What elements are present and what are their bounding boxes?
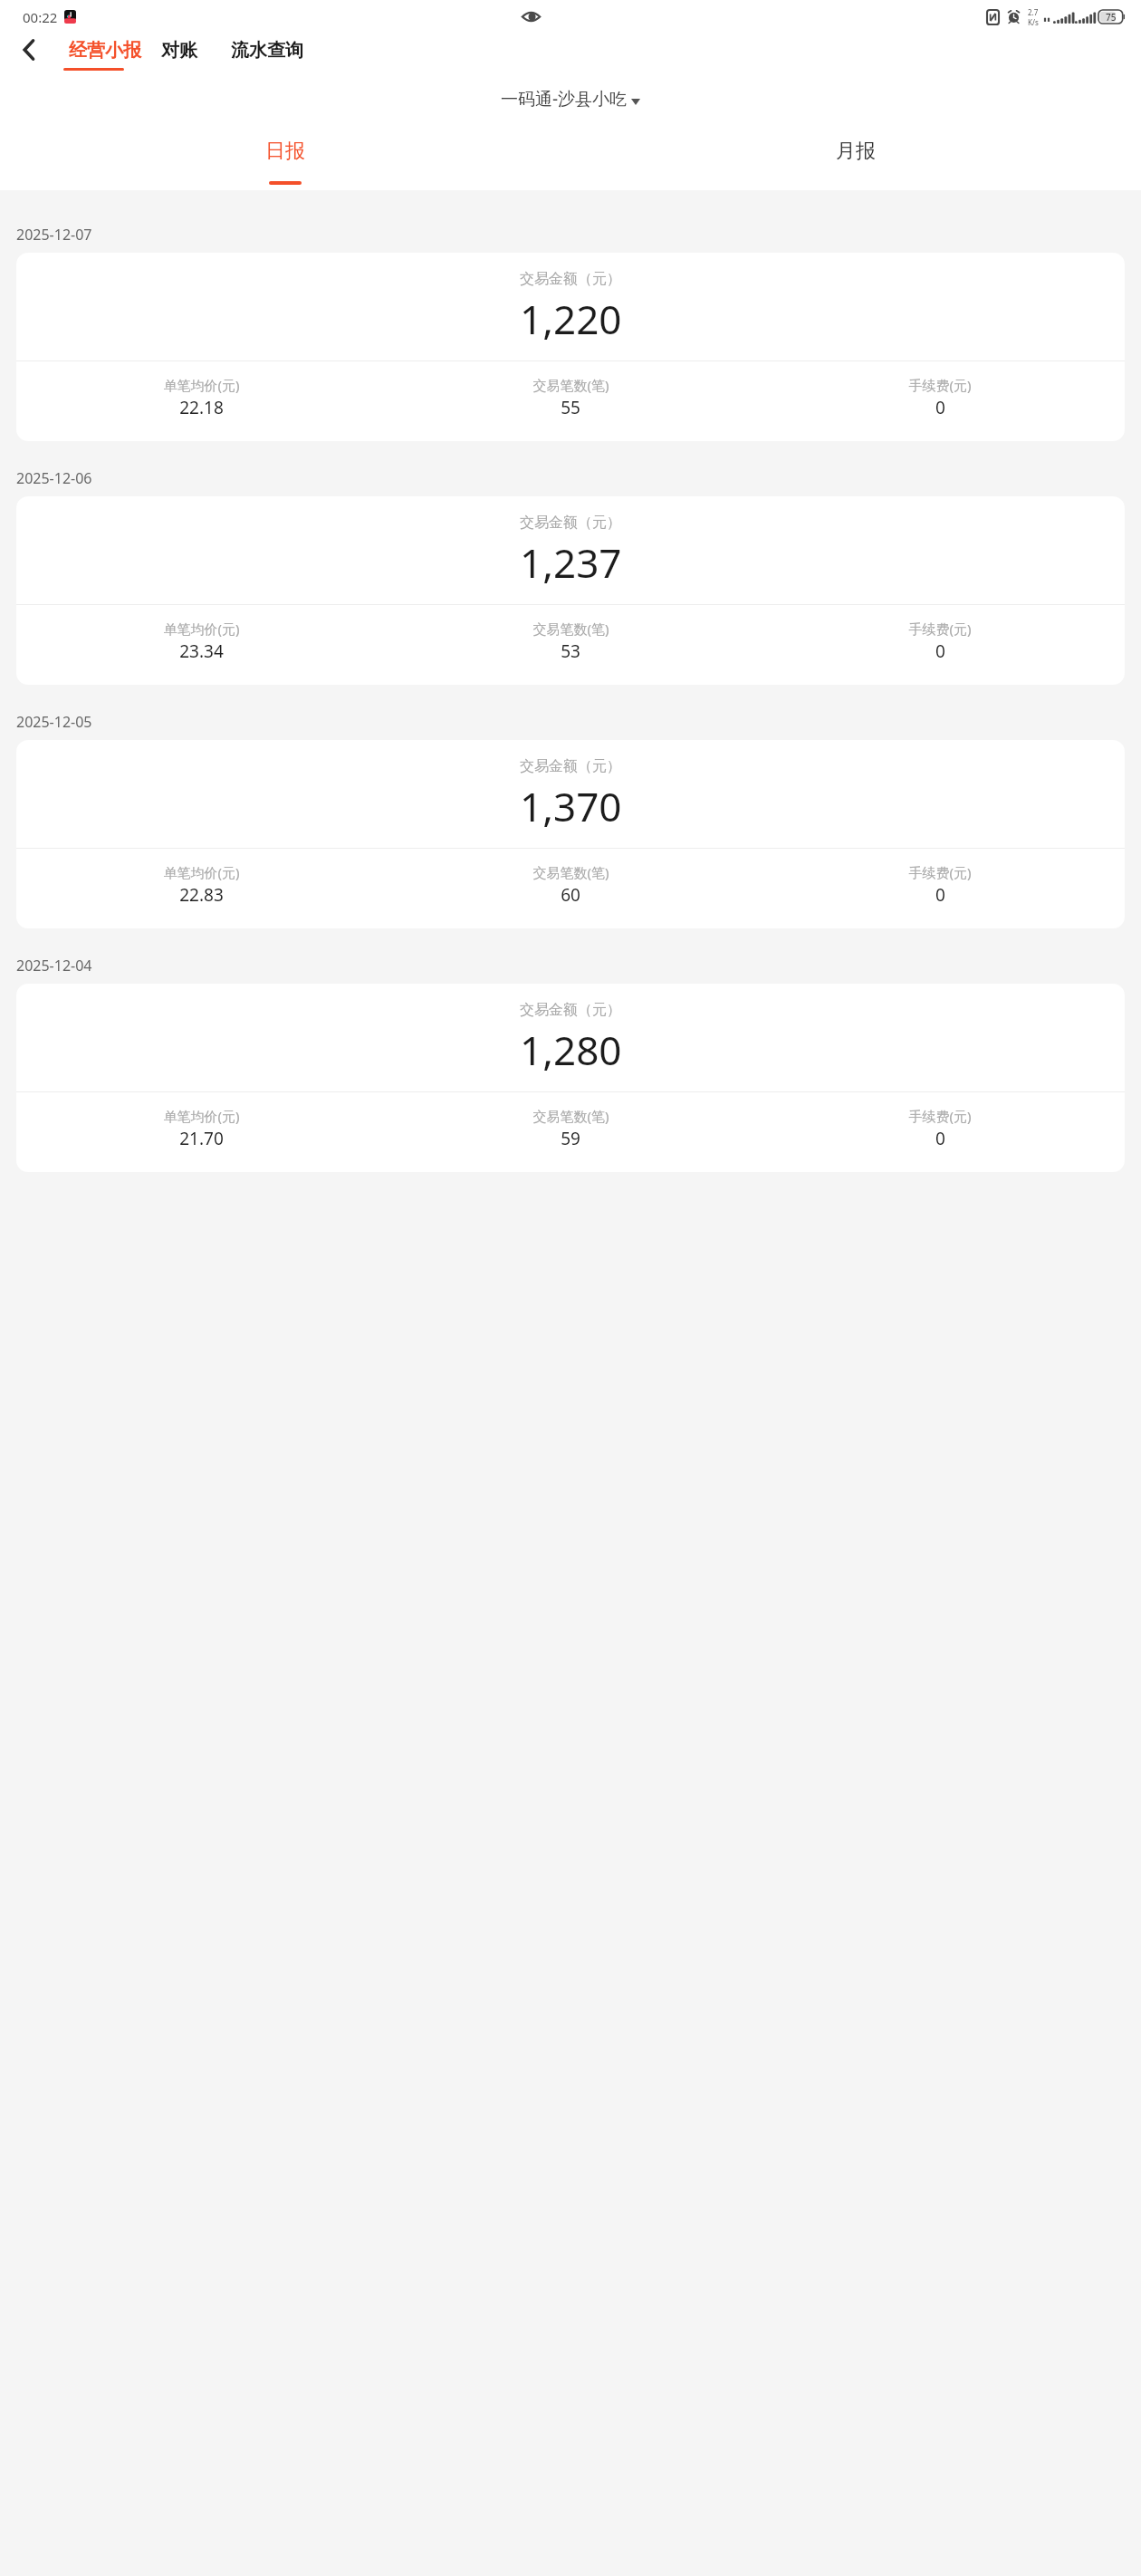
staticText: 交易笔数(笔) [532,863,609,881]
staticText: 23.34 [179,639,224,663]
button[interactable]: 日报 [0,134,570,190]
staticText: 1,237 [520,535,622,590]
staticText: 2025-12-06 [16,468,92,488]
staticText: 流水查询 [231,39,303,62]
staticText: 交易金额（元） [520,757,621,775]
staticText: 60 [561,883,580,907]
staticText: 75 [1106,11,1117,24]
button[interactable]: 经营小报 [63,37,147,63]
staticText: 交易笔数(笔) [532,376,609,394]
button[interactable]: 一码通-沙县小吃 [492,83,649,114]
staticText: 单笔均价(元) [163,620,240,638]
staticText: 单笔均价(元) [163,376,240,394]
staticText: 交易金额（元） [520,1001,621,1019]
staticText: 月报 [836,139,876,164]
staticText: 手续费(元) [908,376,972,394]
staticText: 00:22 [23,8,58,26]
staticText: 交易笔数(笔) [532,1107,609,1125]
staticText: 1,370 [520,779,622,833]
staticText: 对账 [161,39,197,62]
staticText: K/s [1028,17,1039,27]
staticText: 手续费(元) [908,620,972,638]
staticText: 交易笔数(笔) [532,620,609,638]
button[interactable]: 流水查询 [225,37,309,63]
staticText: 1,280 [520,1023,622,1077]
staticText: 经营小报 [69,39,141,62]
staticText: 日报 [265,139,305,164]
staticText: 0 [935,883,945,907]
button[interactable]: 对账 [156,37,203,63]
button[interactable]: Back [11,34,47,66]
button[interactable]: 交易金额（元） [16,253,1125,441]
staticText: 53 [561,639,580,663]
staticText: 22.83 [179,883,224,907]
staticText: 59 [561,1127,580,1150]
button[interactable]: 交易金额（元） [16,496,1125,685]
button[interactable]: 交易金额（元） [16,740,1125,928]
staticText: 0 [935,396,945,419]
staticText: 0 [935,639,945,663]
staticText: 2.7 [1028,7,1039,17]
staticText: 手续费(元) [908,1107,972,1125]
staticText: 交易金额（元） [520,514,621,532]
staticText: 2025-12-04 [16,956,92,976]
staticText: 手续费(元) [908,863,972,881]
button[interactable]: 交易金额（元） [16,984,1125,1172]
staticText: 0 [935,1127,945,1150]
staticText: 交易金额（元） [520,270,621,288]
staticText: 2025-12-07 [16,225,92,245]
button[interactable]: 月报 [570,134,1141,190]
staticText: 55 [561,396,580,419]
staticText: 2025-12-05 [16,712,92,732]
staticText: 22.18 [179,396,224,419]
staticText: 21.70 [179,1127,224,1150]
staticText: 单笔均价(元) [163,863,240,881]
staticText: 单笔均价(元) [163,1107,240,1125]
staticText: 1,220 [520,292,622,346]
staticText: 一码通-沙县小吃 [501,87,628,111]
